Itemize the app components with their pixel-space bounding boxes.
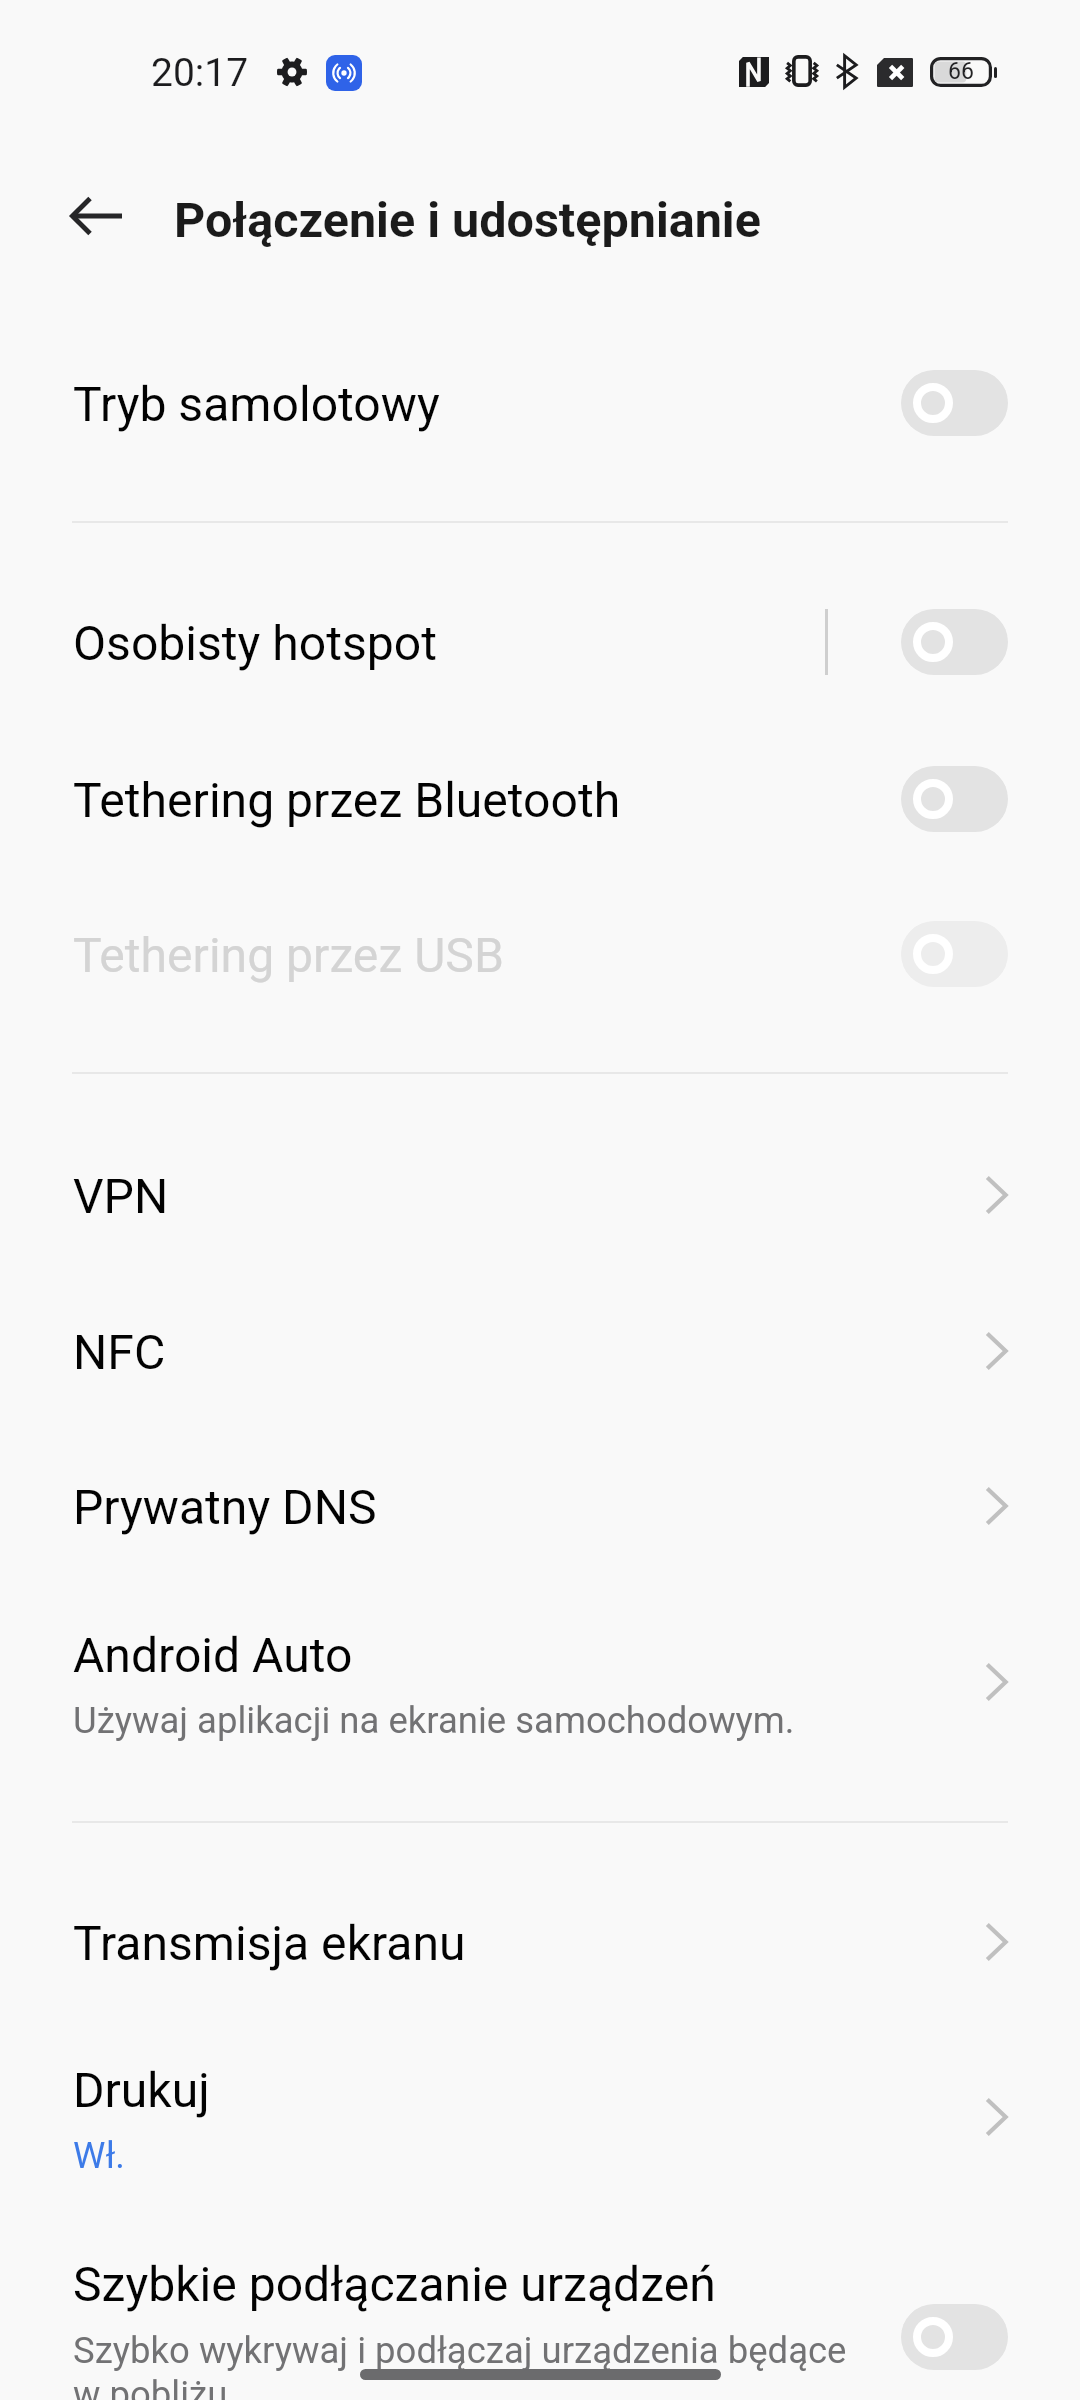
button[interactable]: Wstecz xyxy=(26,176,166,264)
staticText: Połączenie i udostępnianie xyxy=(174,192,761,249)
button[interactable]: Szybkie podłączanie urządzeń xyxy=(0,2215,1080,2400)
button[interactable]: Osobisty hotspot xyxy=(0,560,1080,737)
staticText: VPN xyxy=(73,1168,169,1224)
staticText: Szybko wykrywaj i podłączaj urządzenia b… xyxy=(73,2329,847,2400)
button[interactable]: Przełącznik xyxy=(901,370,1008,436)
staticText: Tryb samolotowy xyxy=(73,376,440,432)
button[interactable]: Przełącznik xyxy=(901,609,1008,675)
staticText: 20:17 xyxy=(151,50,249,96)
staticText: Tethering przez USB xyxy=(73,927,504,983)
button[interactable]: Przełącznik xyxy=(901,766,1008,832)
staticText: Tethering przez Bluetooth xyxy=(73,772,621,828)
button[interactable]: Drukuj xyxy=(0,2041,1080,2210)
staticText: Drukuj xyxy=(73,2062,210,2118)
staticText: 66 xyxy=(948,58,974,85)
button[interactable]: Przełącznik xyxy=(901,2304,1008,2370)
button[interactable]: Android Auto xyxy=(0,1599,1080,1800)
button[interactable]: Prywatny DNS xyxy=(0,1448,1080,1598)
staticText: Używaj aplikacji na ekranie samochodowym… xyxy=(73,1699,795,1742)
button[interactable]: VPN xyxy=(0,1135,1080,1291)
staticText: Wł. xyxy=(73,2134,125,2177)
staticText: Prywatny DNS xyxy=(73,1479,377,1535)
button[interactable]: NFC xyxy=(0,1292,1080,1447)
button[interactable]: Tethering przez USB xyxy=(0,896,1080,1051)
button[interactable]: Tryb samolotowy xyxy=(0,330,1080,500)
staticText: Android Auto xyxy=(73,1627,353,1683)
button[interactable]: Transmisja ekranu xyxy=(0,1880,1080,2040)
staticText: Transmisja ekranu xyxy=(73,1915,466,1971)
staticText: Osobisty hotspot xyxy=(73,615,437,671)
staticText: NFC xyxy=(73,1324,166,1380)
button[interactable]: Tethering przez Bluetooth xyxy=(0,740,1080,895)
staticText: Szybkie podłączanie urządzeń xyxy=(73,2256,716,2312)
button[interactable]: Przełącznik xyxy=(901,921,1008,987)
